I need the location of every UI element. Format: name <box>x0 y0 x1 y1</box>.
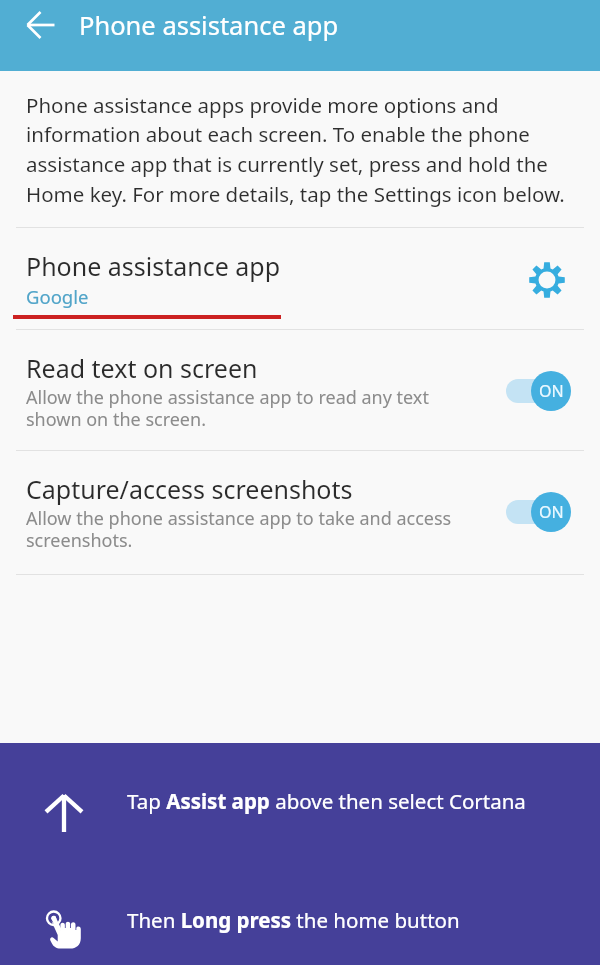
button[interactable]: Toggle on <box>505 370 573 412</box>
staticText: Allow the phone assistance app to take a… <box>26 506 465 552</box>
staticText: ON <box>539 501 564 523</box>
button[interactable]: Phone assistance app <box>0 228 600 329</box>
button[interactable]: Capture/access screenshots <box>0 451 600 574</box>
button[interactable]: Navigate up <box>13 0 69 53</box>
button[interactable]: Long press <box>0 854 600 965</box>
staticText: Phone assistance app <box>26 249 281 283</box>
button[interactable]: Settings <box>525 258 569 302</box>
staticText: Read text on screen <box>26 351 258 385</box>
button[interactable]: Read text on screen <box>0 330 600 450</box>
staticText: Tap Assist app above then select Cortana <box>127 787 526 815</box>
other: Long press <box>43 907 90 950</box>
staticText: ON <box>539 380 564 402</box>
button[interactable]: Up <box>0 743 600 854</box>
staticText: Then Long press the home button <box>127 906 460 934</box>
staticText: Phone assistance apps provide more optio… <box>26 91 574 208</box>
staticText: Capture/access screenshots <box>26 472 353 506</box>
staticText: Phone assistance app <box>79 8 339 43</box>
staticText: Google <box>26 284 89 309</box>
button[interactable]: Toggle on <box>505 491 573 533</box>
other: Up <box>44 793 84 833</box>
staticText: Allow the phone assistance app to read a… <box>26 385 465 431</box>
